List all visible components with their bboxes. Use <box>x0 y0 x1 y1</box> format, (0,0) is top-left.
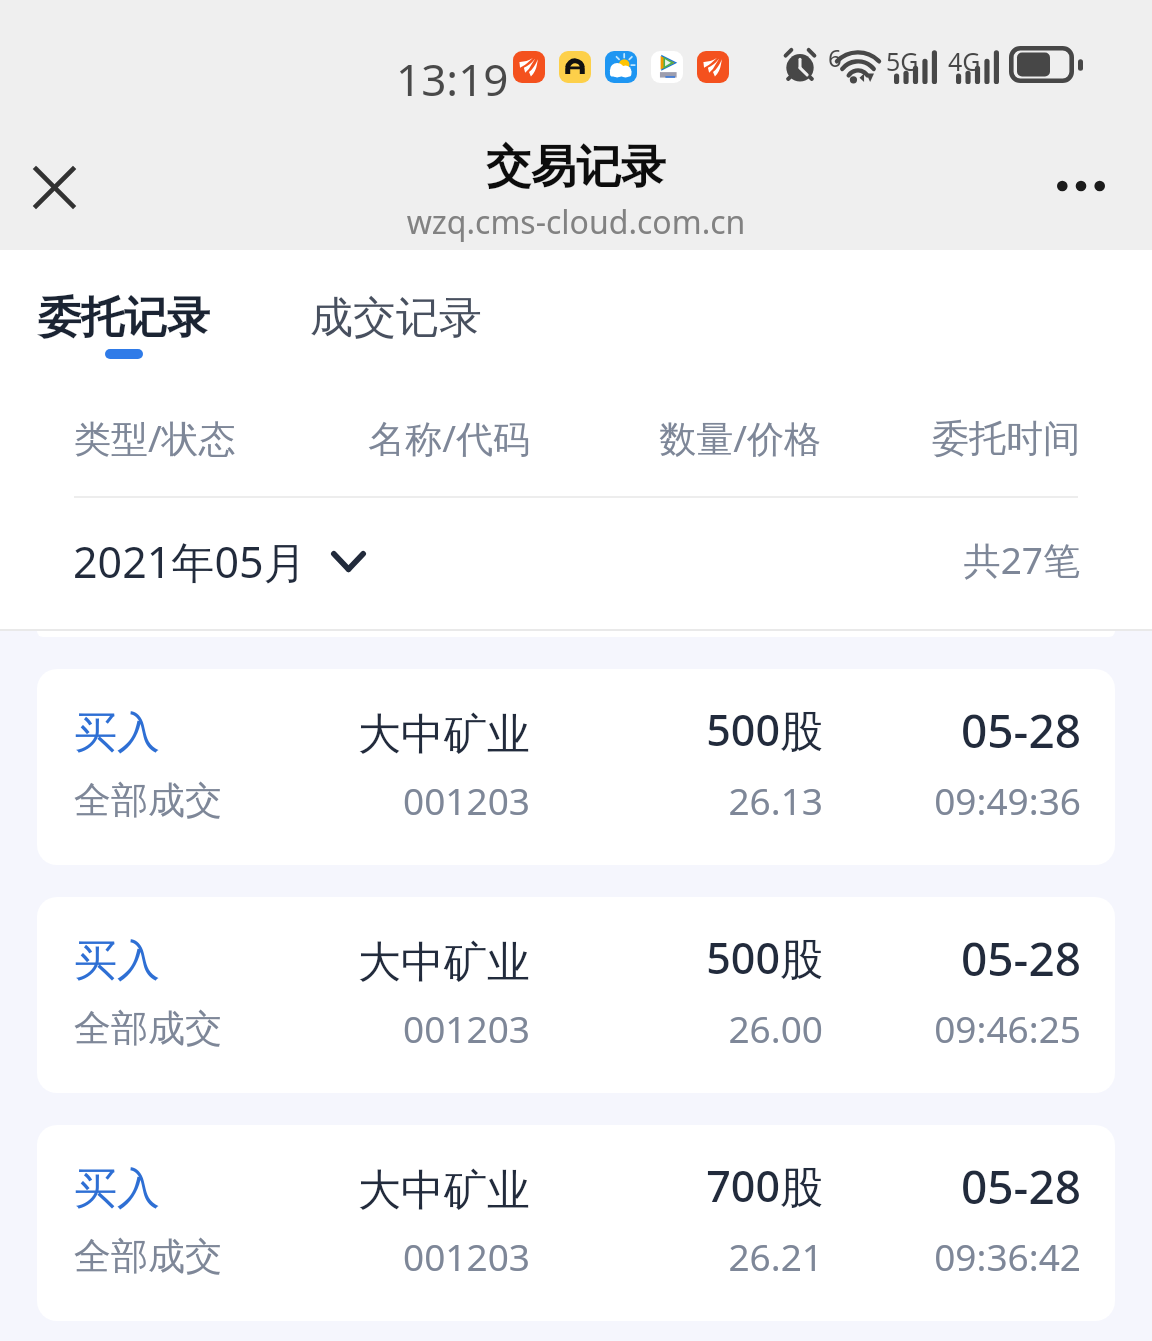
button[interactable]: 买入 <box>37 669 1115 865</box>
staticText: 委托记录 <box>38 291 210 345</box>
staticText: 全部成交 <box>74 777 222 824</box>
staticText: 5G <box>886 44 919 78</box>
staticText: 001203 <box>230 775 530 825</box>
staticText: 交易记录 <box>0 139 1152 196</box>
staticText: 大中矿业 <box>230 1164 530 1218</box>
button[interactable]: 委托记录 <box>0 250 260 380</box>
button[interactable]: 买入 <box>37 1125 1115 1321</box>
staticText: 09:36:42 <box>781 1231 1081 1281</box>
staticText: 001203 <box>230 1231 530 1281</box>
staticText: 26.21 <box>523 1231 823 1281</box>
staticText: 05-28 <box>781 699 1081 762</box>
staticText: 6 <box>828 41 842 74</box>
staticText: 成交记录 <box>310 291 482 345</box>
staticText: 全部成交 <box>74 1005 222 1052</box>
staticText: 26.00 <box>523 1003 823 1053</box>
button[interactable]: 买入 <box>37 897 1115 1093</box>
staticText: 类型/状态 <box>74 412 236 463</box>
staticText: 买入 <box>74 1162 160 1216</box>
staticText: 500股 <box>523 928 823 987</box>
staticText: 09:49:36 <box>781 775 1081 825</box>
staticText: 共27笔 <box>780 534 1080 585</box>
staticText: 26.13 <box>523 775 823 825</box>
staticText: 大中矿业 <box>230 708 530 762</box>
staticText: 名称/代码 <box>230 412 530 463</box>
staticText: 700股 <box>523 1156 823 1215</box>
staticText: 001203 <box>230 1003 530 1053</box>
staticText: 全部成交 <box>74 1233 222 1280</box>
staticText: 买入 <box>74 706 160 760</box>
staticText: 2021年05月 <box>73 532 307 591</box>
staticText: 13:19 <box>396 49 509 109</box>
button[interactable]: Close <box>17 150 92 225</box>
button[interactable]: 成交记录 <box>260 250 521 380</box>
staticText: wzq.cms-cloud.com.cn <box>0 200 1152 244</box>
staticText: 05-28 <box>781 1155 1081 1218</box>
staticText: 大中矿业 <box>230 936 530 990</box>
staticText: 数量/价格 <box>521 412 821 463</box>
staticText: 委托时间 <box>780 415 1080 462</box>
staticText: 买入 <box>74 934 160 988</box>
staticText: 05-28 <box>781 927 1081 990</box>
staticText: 500股 <box>523 700 823 759</box>
staticText: 4G <box>948 44 981 78</box>
staticText: 09:46:25 <box>781 1003 1081 1053</box>
button[interactable]: More options <box>1043 148 1118 223</box>
button[interactable]: 2021年05月 <box>73 532 366 591</box>
